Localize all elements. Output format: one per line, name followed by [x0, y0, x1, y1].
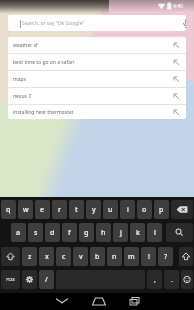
staticText: s — [34, 228, 38, 238]
button[interactable]: s — [28, 223, 43, 242]
button[interactable] — [181, 270, 193, 289]
button[interactable]: j — [113, 223, 128, 242]
button[interactable]: x — [39, 247, 54, 266]
button[interactable]: t — [69, 200, 84, 219]
staticText: o — [142, 205, 147, 215]
staticText: d — [50, 228, 55, 238]
button[interactable]: ? — [158, 247, 173, 266]
button[interactable]: k — [130, 223, 145, 242]
button[interactable] — [171, 200, 193, 219]
staticText: i — [127, 205, 129, 215]
staticText: m — [128, 252, 135, 262]
button[interactable]: n — [107, 247, 122, 266]
staticText: e — [40, 205, 45, 215]
button[interactable] — [0, 293, 64, 310]
button[interactable] — [1, 247, 20, 266]
button[interactable]: c — [56, 247, 71, 266]
staticText: . — [171, 275, 173, 285]
staticText: x — [45, 252, 49, 262]
staticText: Search, or say “Ok Google” — [22, 20, 85, 27]
button[interactable]: o — [137, 200, 152, 219]
button[interactable]: w — [18, 200, 33, 219]
button[interactable]: l — [147, 223, 162, 242]
staticText: ! — [148, 252, 150, 262]
button[interactable] — [129, 293, 194, 310]
button[interactable]: y — [86, 200, 101, 219]
staticText: nexus 7 — [13, 93, 32, 100]
staticText: y — [92, 205, 96, 215]
staticText: h — [101, 228, 106, 238]
staticText: l — [154, 228, 156, 238]
staticText: k — [136, 228, 140, 238]
button[interactable]: weather sf — [8, 37, 186, 53]
staticText: installing nest thermostat — [13, 109, 74, 116]
button[interactable]: f — [62, 223, 77, 242]
button[interactable] — [64, 293, 129, 310]
staticText: v — [79, 252, 83, 262]
staticText: u — [108, 205, 113, 215]
staticText: maps — [13, 76, 26, 83]
button[interactable]: maps — [8, 71, 186, 87]
button[interactable]: u — [103, 200, 118, 219]
button[interactable]: ?123 — [1, 270, 20, 289]
button[interactable]: best time to go on a safari — [8, 54, 186, 70]
staticText: j — [120, 228, 122, 238]
button[interactable]: g — [79, 223, 94, 242]
staticText: c — [62, 252, 66, 262]
button[interactable]: nexus 7 — [8, 88, 186, 104]
staticText: f — [68, 228, 71, 238]
button[interactable]: / — [39, 270, 54, 289]
staticText: best time to go on a safari — [13, 59, 75, 66]
staticText: n — [112, 252, 117, 262]
staticText: / — [45, 275, 48, 285]
staticText: 4:40 — [173, 3, 183, 10]
button[interactable]: i — [120, 200, 135, 219]
button[interactable] — [22, 270, 37, 289]
staticText: w — [23, 205, 29, 215]
button[interactable]: . — [164, 270, 179, 289]
button[interactable]: h — [96, 223, 111, 242]
button[interactable]: Search, or say “Ok Google” — [8, 15, 186, 31]
button[interactable]: z — [22, 247, 37, 266]
staticText: weather sf — [13, 42, 38, 49]
button[interactable]: installing nest thermostat — [8, 105, 186, 119]
button[interactable]: a — [11, 223, 26, 242]
button[interactable] — [179, 247, 193, 266]
staticText: t — [75, 205, 78, 215]
staticText: b — [95, 252, 100, 262]
button[interactable]: ! — [141, 247, 156, 266]
staticText: r — [58, 205, 61, 215]
staticText: ? — [164, 252, 168, 262]
staticText: a — [16, 228, 21, 238]
button[interactable]: , — [147, 270, 162, 289]
button[interactable]: v — [73, 247, 88, 266]
button[interactable]: m — [124, 247, 139, 266]
staticText: p — [159, 205, 164, 215]
button[interactable]: d — [45, 223, 60, 242]
staticText: ?123 — [6, 277, 15, 282]
staticText: z — [28, 252, 32, 262]
button[interactable] — [166, 223, 193, 242]
staticText: q — [6, 205, 11, 215]
staticText: , — [154, 275, 156, 285]
staticText: g — [84, 228, 89, 238]
button[interactable]: p — [154, 200, 169, 219]
button[interactable]: b — [90, 247, 105, 266]
button[interactable]: r — [52, 200, 67, 219]
button[interactable]: e — [35, 200, 50, 219]
button[interactable]: q — [1, 200, 16, 219]
